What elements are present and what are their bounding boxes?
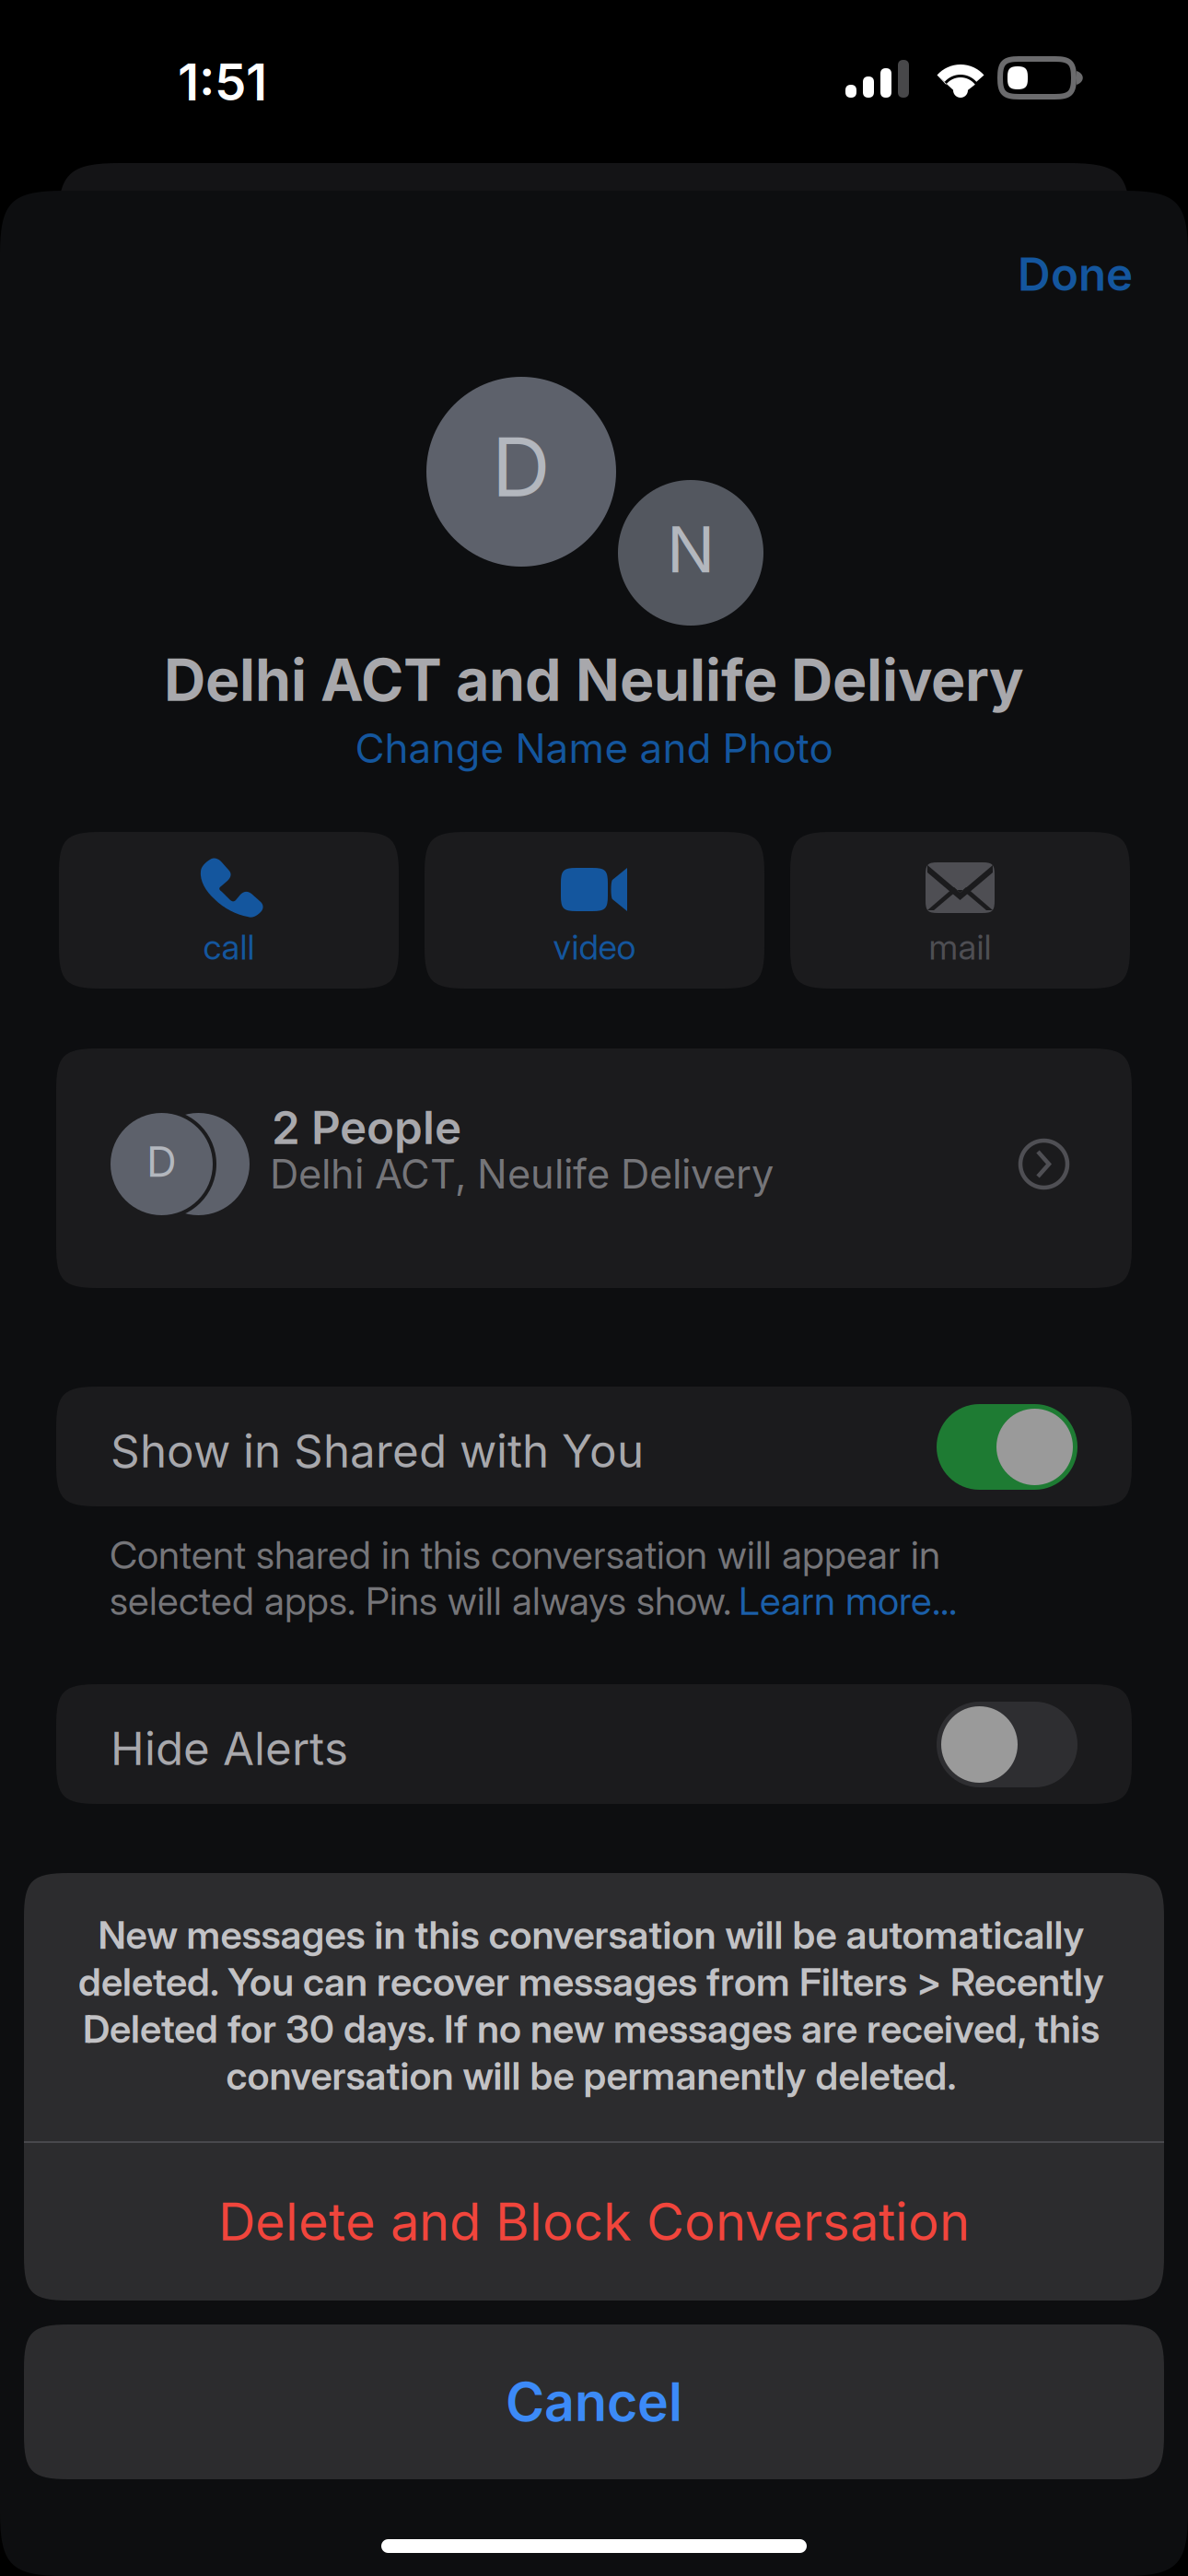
button[interactable]: Change Name and Photo [0,723,1188,773]
button[interactable]: Cancel [24,2324,1164,2479]
staticText: Done [1018,247,1133,302]
staticText: Show in Shared with You [111,1423,644,1478]
staticText: Deleted for 30 days. If no new messages … [83,2005,1100,2052]
button[interactable]: D [56,1048,1132,1288]
staticText: Cancel [506,2370,682,2434]
button[interactable]: Show in Shared with You [56,1387,1132,1506]
staticText: Change Name and Photo [355,724,833,773]
staticText: Hide Alerts [111,1721,348,1776]
staticText: Content shared in this conversation will… [110,1531,940,1578]
staticText: Delhi ACT and Neulife Delivery [164,645,1024,715]
staticText: New messages in this conversation will b… [98,1911,1084,1958]
staticText: D [492,418,551,516]
staticText: Learn more... [739,1577,957,1624]
staticText: Delete and Block Conversation [218,2191,970,2253]
button[interactable]: Delete and Block Conversation [24,2143,1164,2301]
staticText: call [203,926,255,968]
staticText: 2 People [272,1100,461,1155]
staticText: selected apps. Pins will always show. [110,1577,731,1624]
staticText: Delhi ACT, Neulife Delivery [270,1150,774,1198]
button[interactable]: Hide Alerts [56,1684,1132,1804]
button[interactable]: video [425,832,764,989]
staticText: 1:51 [178,52,267,112]
staticText: N [667,511,715,588]
button[interactable]: Done [966,235,1133,313]
staticText: video [553,926,636,968]
staticText: D [146,1136,177,1187]
staticText: mail [929,926,991,968]
button[interactable]: mail [790,832,1130,989]
staticText: conversation will be permanently deleted… [226,2052,956,2099]
staticText: deleted. You can recover messages from F… [78,1958,1104,2005]
button[interactable]: call [59,832,399,989]
button[interactable]: Learn more... [739,1577,957,1624]
